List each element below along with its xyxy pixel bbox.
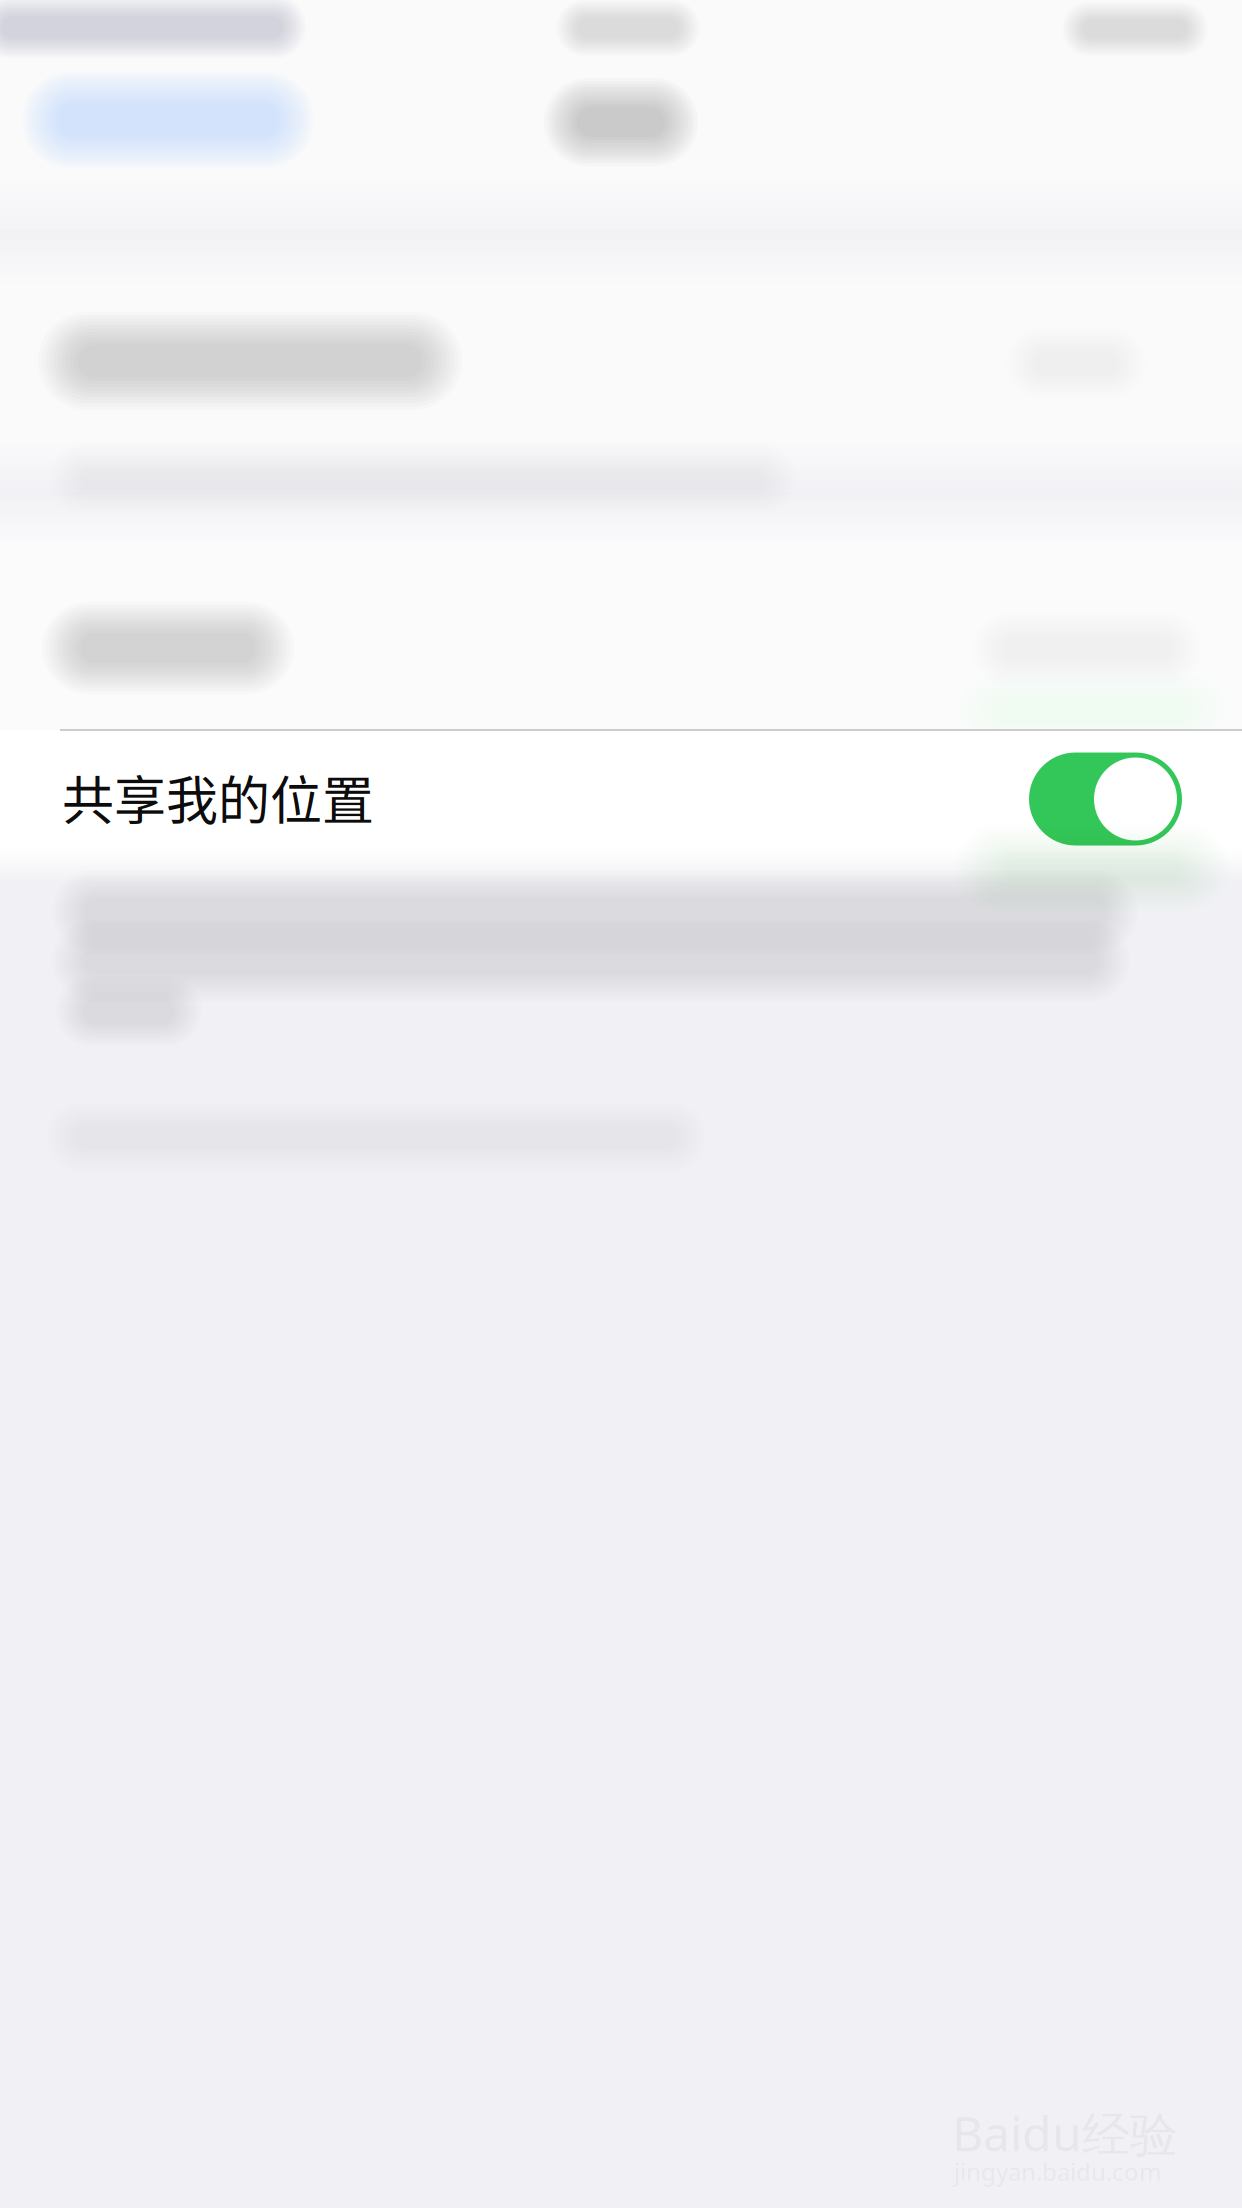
button[interactable]: 共享我的位置 (0, 734, 1242, 860)
staticText: 共享我的位置 (62, 759, 374, 835)
staticText: Baidu经验 (952, 2100, 1178, 2166)
staticText: jingyan.baidu.com (954, 2155, 1161, 2188)
